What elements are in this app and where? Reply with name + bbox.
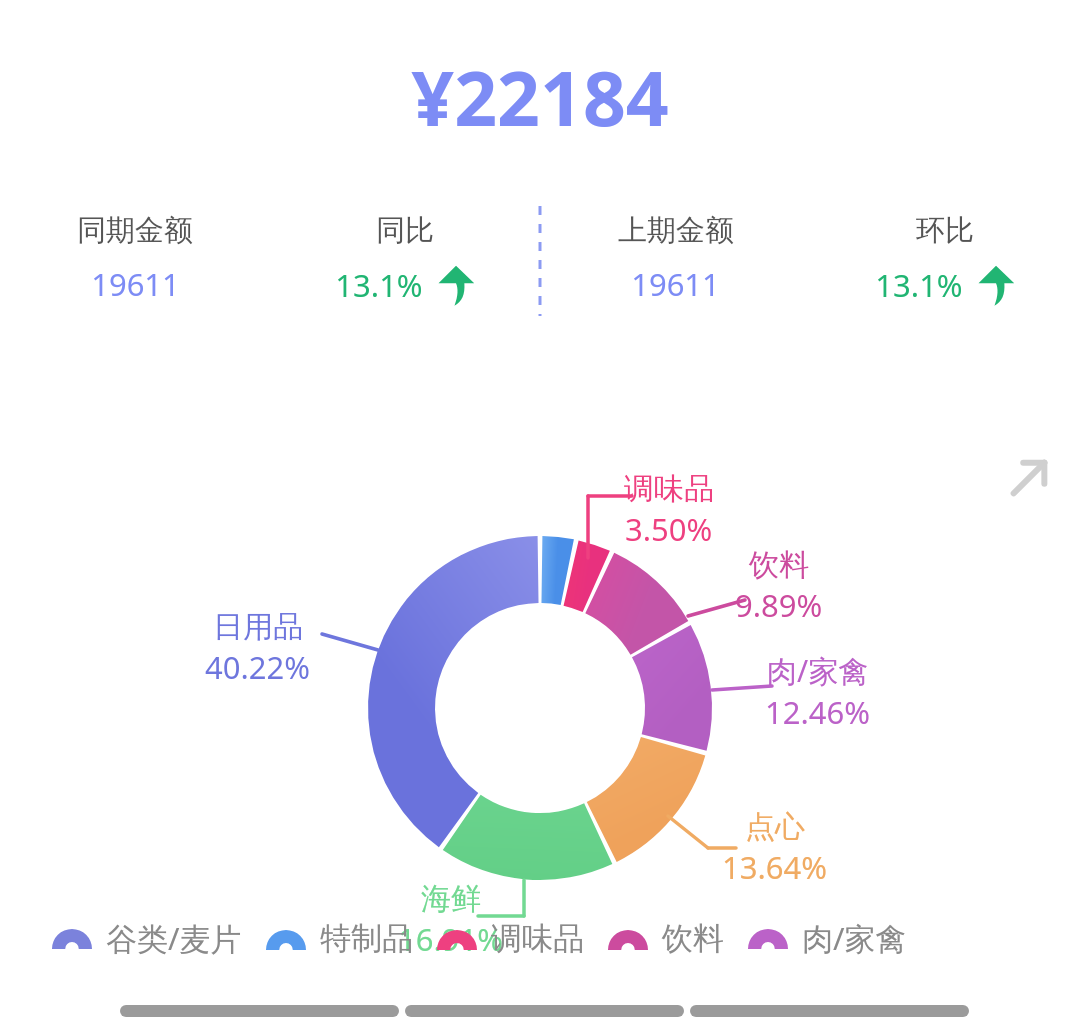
staticText: 19611 xyxy=(631,263,720,305)
staticText: 点心 xyxy=(745,808,805,846)
button[interactable]: 点心 xyxy=(722,808,827,888)
button[interactable]: 环比 xyxy=(810,206,1079,307)
button[interactable]: Expand chart xyxy=(1005,454,1053,502)
button[interactable]: 肉/家禽 xyxy=(765,650,870,733)
staticText: 同期金额 xyxy=(77,212,193,249)
staticText: 饮料 xyxy=(662,919,724,958)
button[interactable]: 同期金额 xyxy=(0,206,270,305)
staticText: 13.64% xyxy=(722,846,827,888)
staticText: 13.1% xyxy=(875,264,963,306)
button[interactable]: 同比 xyxy=(270,206,539,307)
button[interactable]: 调味品 xyxy=(624,470,714,550)
button[interactable]: Page indicator xyxy=(405,1005,684,1017)
button[interactable]: 特制品 xyxy=(266,919,413,958)
button[interactable]: 上期金额 xyxy=(541,206,810,305)
button[interactable]: Page indicator xyxy=(120,1005,399,1017)
staticText: 40.22% xyxy=(205,646,310,688)
staticText: 调味品 xyxy=(624,470,714,508)
staticText: 9.89% xyxy=(735,584,823,626)
staticText: 调味品 xyxy=(491,919,584,958)
staticText: 饮料 xyxy=(749,546,809,584)
staticText: 12.46% xyxy=(765,691,870,733)
button[interactable]: 饮料 xyxy=(735,546,823,626)
button[interactable]: 肉/家禽 xyxy=(748,917,907,959)
staticText: 环比 xyxy=(916,212,974,249)
staticText: 日用品 xyxy=(213,608,303,646)
staticText: 19611 xyxy=(91,263,180,305)
staticText: 13.1% xyxy=(335,264,423,306)
staticText: 肉/家禽 xyxy=(767,650,869,691)
button[interactable]: 饮料 xyxy=(608,919,724,958)
button[interactable]: 海鲜 xyxy=(398,880,503,960)
staticText: 上期金额 xyxy=(618,212,734,249)
button[interactable]: Page indicator xyxy=(690,1005,969,1017)
staticText: 同比 xyxy=(376,212,434,249)
staticText: 3.50% xyxy=(625,508,713,550)
staticText: 16.91% xyxy=(398,918,503,960)
staticText: 谷类/麦片 xyxy=(106,917,242,959)
button[interactable]: 日用品 xyxy=(205,608,310,688)
staticText: ¥22184 xyxy=(411,46,669,148)
button[interactable]: 调味品 xyxy=(437,919,584,958)
button[interactable]: 谷类/麦片 xyxy=(52,917,242,959)
staticText: 海鲜 xyxy=(421,880,481,918)
staticText: 肉/家禽 xyxy=(802,917,907,959)
staticText: 特制品 xyxy=(320,919,413,958)
